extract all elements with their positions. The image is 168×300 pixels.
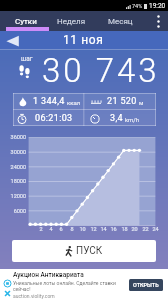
staticText: Аукцион Антиквариата: [13, 271, 84, 279]
staticText: 2: [39, 226, 43, 232]
button[interactable]: More options: [148, 11, 168, 31]
button[interactable]: 3,4: [89, 110, 159, 127]
staticText: 14: [100, 226, 107, 232]
staticText: 21 520: [107, 96, 137, 107]
staticText: 24: [152, 226, 159, 232]
staticText: 30 743: [42, 51, 160, 90]
staticText: 24000: [10, 164, 26, 170]
staticText: ПУСК: [76, 245, 103, 257]
button[interactable]: 06:21:03: [16, 110, 86, 127]
button[interactable]: ОТКРЫТЬ: [133, 282, 159, 288]
button[interactable]: 21 520: [90, 93, 160, 110]
staticText: 12000: [10, 193, 26, 199]
staticText: 4: [49, 226, 53, 232]
staticText: Месяц: [108, 17, 133, 26]
staticText: 8: [70, 226, 74, 232]
button[interactable]: Сутки: [2, 11, 49, 31]
staticText: auction.violity.com: [13, 293, 55, 299]
staticText: 22: [142, 226, 149, 232]
staticText: 18000: [10, 178, 26, 184]
staticText: Уникальные лоты онлайн. Сделайте ставки …: [13, 280, 129, 292]
staticText: 10: [79, 226, 86, 232]
staticText: 6000: [13, 208, 26, 214]
staticText: 12: [90, 226, 97, 232]
staticText: шаг: [21, 55, 33, 63]
staticText: 74%: [132, 3, 143, 9]
staticText: 30000: [10, 149, 26, 155]
button[interactable]: ПУСК: [12, 240, 156, 262]
staticText: м: [139, 99, 144, 106]
staticText: Неделя: [57, 17, 86, 26]
staticText: 19:20: [149, 2, 166, 10]
staticText: 18: [121, 226, 128, 232]
staticText: 36000: [10, 134, 26, 140]
staticText: 3,4: [110, 113, 123, 124]
staticText: 11 ноя: [63, 33, 104, 47]
staticText: Сутки: [15, 17, 37, 26]
staticText: km/h: [125, 116, 140, 123]
button[interactable]: Неделя: [49, 11, 94, 31]
staticText: ккал: [67, 99, 81, 106]
staticText: 16: [110, 226, 117, 232]
button[interactable]: Previous day: [0, 31, 25, 49]
button[interactable]: Месяц: [96, 11, 144, 31]
staticText: 6: [59, 226, 63, 232]
button[interactable]: 1 344,4: [17, 93, 87, 110]
staticText: 06:21:03: [35, 113, 73, 124]
staticText: 20: [131, 226, 138, 232]
staticText: ОТКРЫТЬ: [133, 282, 159, 288]
staticText: 1 344,4: [33, 96, 65, 107]
